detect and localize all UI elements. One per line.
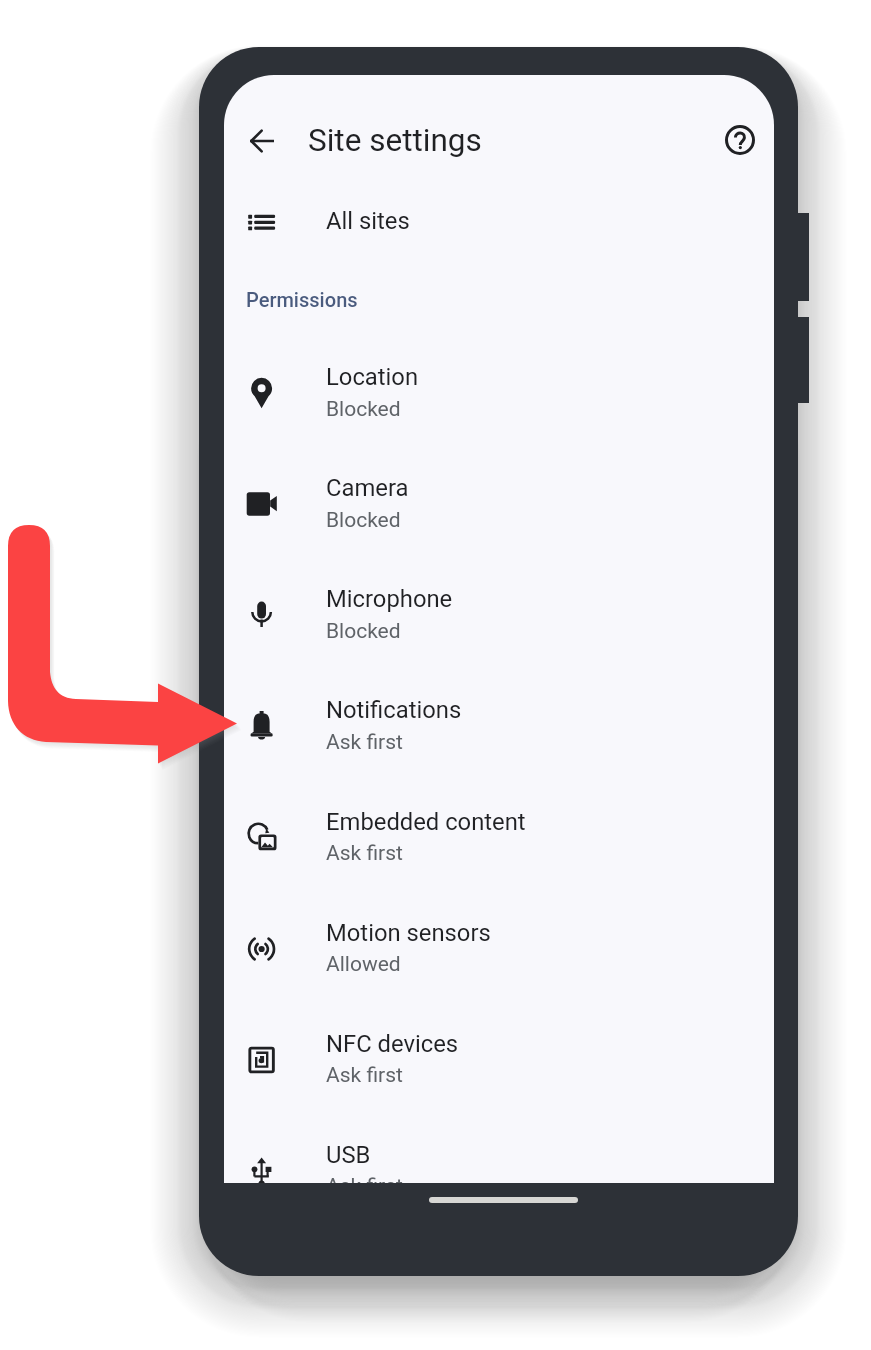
staticText: Notifications: [326, 696, 462, 724]
staticText: Blocked: [326, 397, 401, 422]
staticText: Motion sensors: [326, 919, 491, 947]
staticText: Location: [326, 363, 419, 391]
staticText: Ask first: [326, 1174, 403, 1183]
staticText: Microphone: [326, 585, 453, 613]
staticText: Camera: [326, 474, 409, 502]
button[interactable]: [224, 560, 774, 671]
button[interactable]: [224, 449, 774, 560]
staticText: USB: [326, 1141, 371, 1169]
button[interactable]: [224, 894, 774, 1005]
staticText: All sites: [326, 207, 410, 235]
button[interactable]: Help: [716, 116, 764, 164]
button[interactable]: [224, 1005, 774, 1116]
button[interactable]: [224, 782, 774, 893]
button[interactable]: [224, 671, 774, 782]
staticText: NFC devices: [326, 1030, 459, 1058]
staticText: Embedded content: [326, 808, 526, 836]
button[interactable]: [224, 338, 774, 449]
staticText: Site settings: [308, 122, 482, 159]
staticText: Blocked: [326, 619, 401, 644]
button[interactable]: [224, 190, 774, 254]
staticText: Ask first: [326, 730, 403, 755]
staticText: Allowed: [326, 952, 401, 977]
staticText: Permissions: [246, 288, 358, 311]
staticText: Ask first: [326, 1063, 403, 1088]
button[interactable]: Back: [237, 116, 285, 164]
staticText: Blocked: [326, 508, 401, 533]
staticText: Ask first: [326, 841, 403, 866]
button[interactable]: [224, 1116, 774, 1183]
